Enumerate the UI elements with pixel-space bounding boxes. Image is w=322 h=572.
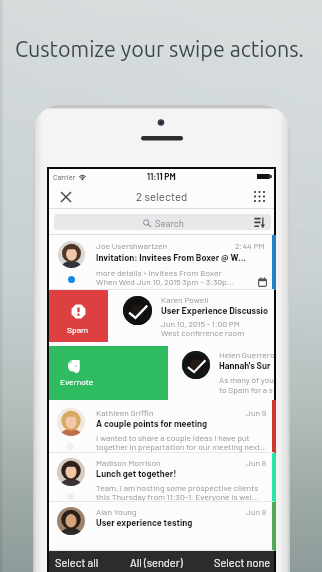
staticText: Alan Young: [96, 506, 137, 516]
staticText: Joe Usershwartzen: [96, 240, 168, 250]
button[interactable]: Apps: [249, 186, 270, 207]
staticText: more details › Invitees From Boxer: [96, 267, 222, 277]
staticText: Jun 8: [246, 506, 267, 516]
button[interactable]: Select all: [51, 551, 103, 572]
button[interactable]: Close selection: [55, 186, 76, 207]
button[interactable]: Sort order: [251, 214, 269, 230]
staticText: Carrier: [53, 172, 76, 181]
staticText: to Spain for a s: [219, 384, 273, 394]
button[interactable]: Madison Morrison: [49, 453, 274, 502]
staticText: Spam: [67, 324, 89, 334]
staticText: When Wed Jun 10, 2015 3pm – 3:30p…: [96, 276, 234, 286]
staticText: Jun 9: [246, 407, 267, 417]
staticText: Select all: [55, 556, 99, 569]
staticText: this Thursday from 11:30-1. Everyone is …: [96, 491, 259, 501]
staticText: Customize your swipe actions.: [15, 37, 304, 61]
staticText: As many of you: [219, 374, 274, 384]
button[interactable]: Select none: [211, 551, 273, 572]
staticText: Helen Guerrero: [219, 349, 275, 359]
staticText: User experience testing: [96, 517, 193, 528]
button[interactable]: Alan Young: [49, 502, 274, 551]
staticText: Search: [155, 217, 184, 228]
staticText: Invitation: Invitees From Boxer @ W…: [96, 252, 247, 263]
staticText: Kathleen Griffin: [96, 407, 154, 417]
button[interactable]: Joe Usershwartzen: [49, 235, 274, 290]
staticText: A couple points for meeting: [96, 418, 208, 429]
button[interactable]: Evernote: [49, 346, 168, 400]
staticText: together in prepartation for our meeting…: [96, 441, 268, 451]
staticText: All (sender): [130, 556, 183, 569]
button[interactable]: Kathleen Griffin: [49, 400, 274, 453]
button[interactable]: All (sender): [127, 551, 185, 572]
staticText: Jun 10, 2015 - 1:00 PM: [161, 318, 240, 328]
button[interactable]: [54, 214, 271, 230]
staticText: Karen Powell: [161, 294, 209, 304]
staticText: Madison Morrison: [96, 457, 161, 467]
staticText: Lunch get together!: [96, 468, 177, 479]
staticText: West conference room: [161, 327, 245, 337]
staticText: Hannah's Sur: [219, 360, 271, 371]
staticText: Team, I am hosting some prospective clie…: [96, 482, 259, 492]
staticText: I wanted to share a couple ideas I have …: [96, 432, 250, 442]
staticText: 11:11 PM: [147, 171, 176, 181]
button[interactable]: Spam: [49, 290, 108, 342]
staticText: 2 selected: [136, 189, 188, 203]
staticText: Jun 8: [246, 457, 267, 467]
staticText: Select none: [214, 556, 271, 569]
staticText: 2:44 PM: [235, 240, 265, 250]
staticText: User Experience Discussio: [161, 305, 268, 316]
staticText: Evernote: [60, 376, 94, 386]
